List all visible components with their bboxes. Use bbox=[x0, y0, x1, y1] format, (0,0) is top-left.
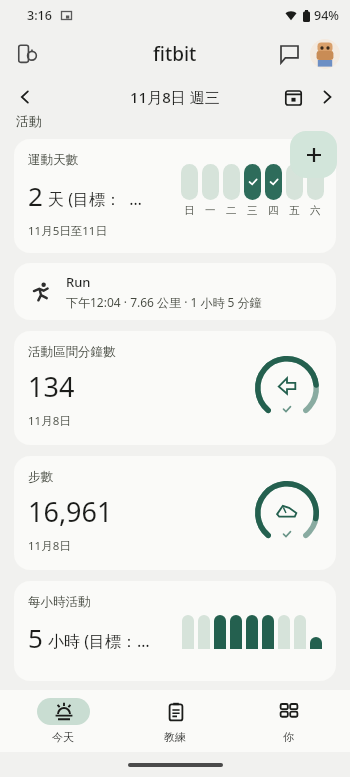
button[interactable]: 每小時活動 bbox=[14, 581, 336, 681]
staticText: 二 bbox=[226, 204, 237, 217]
staticText: 2 bbox=[28, 178, 43, 213]
staticText: fitbit bbox=[153, 41, 197, 67]
staticText: 每小時活動 bbox=[28, 594, 91, 610]
staticText: 步數 bbox=[28, 469, 53, 485]
staticText: 你 bbox=[283, 730, 294, 744]
staticText: 今天 bbox=[52, 730, 74, 744]
staticText: 3:16 bbox=[27, 7, 52, 24]
staticText: Run bbox=[66, 273, 91, 291]
button[interactable]: Calendar bbox=[276, 80, 310, 114]
button[interactable]: Previous day bbox=[8, 80, 42, 114]
staticText: 16,961 bbox=[28, 493, 113, 530]
staticText: 小時 (目標：… bbox=[48, 630, 150, 652]
button[interactable]: Add bbox=[290, 131, 337, 178]
staticText: 11月5日至11日 bbox=[28, 223, 107, 239]
staticText: 教練 bbox=[164, 730, 186, 744]
button[interactable]: Next day bbox=[310, 80, 344, 114]
staticText: 活動 bbox=[16, 113, 42, 129]
staticText: 下午12:04 · 7.66 公里 · 1 小時 5 分鐘 bbox=[66, 294, 262, 310]
staticText: 四 bbox=[268, 204, 279, 217]
staticText: 天 (目標： … bbox=[48, 188, 142, 210]
button[interactable]: Devices bbox=[8, 34, 48, 74]
button[interactable]: 你 bbox=[238, 698, 338, 744]
button[interactable]: 今天 bbox=[13, 698, 113, 744]
button[interactable]: Profile bbox=[310, 39, 340, 69]
button[interactable]: Messages bbox=[270, 35, 308, 73]
staticText: 94% bbox=[314, 7, 339, 24]
button[interactable]: 活動區間分鐘數 bbox=[14, 331, 336, 445]
staticText: 三 bbox=[247, 204, 258, 217]
staticText: 五 bbox=[289, 204, 300, 217]
staticText: 六 bbox=[310, 204, 321, 217]
button[interactable]: 運動天數 bbox=[14, 139, 336, 253]
staticText: 一 bbox=[205, 204, 216, 217]
staticText: 11月8日 週三 bbox=[130, 87, 220, 107]
staticText: 日 bbox=[184, 204, 195, 217]
staticText: 活動區間分鐘數 bbox=[28, 344, 116, 360]
staticText: 11月8日 bbox=[28, 538, 71, 554]
staticText: 5 bbox=[28, 620, 43, 655]
staticText: 134 bbox=[28, 368, 75, 405]
staticText: 運動天數 bbox=[28, 152, 78, 168]
staticText: 11月8日 bbox=[28, 413, 71, 429]
button[interactable]: 教練 bbox=[125, 698, 225, 744]
button[interactable]: 步數 bbox=[14, 456, 336, 570]
button[interactable]: Run bbox=[14, 263, 336, 320]
